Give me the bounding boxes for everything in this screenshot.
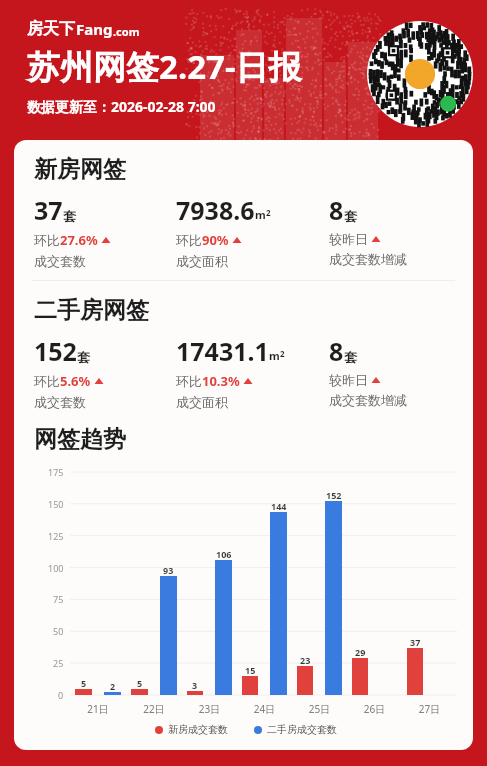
staticText: 8 (329, 193, 344, 227)
staticText: 93 (163, 564, 174, 576)
staticText: Fang (76, 19, 113, 39)
staticText: 二手房网签 (34, 296, 149, 325)
staticText: 25 (53, 657, 64, 669)
button[interactable]: 新房成交套数 (155, 723, 228, 736)
staticText: 175 (48, 466, 64, 478)
button[interactable]: 17431.1 (176, 334, 329, 410)
staticText: 成交面积 (176, 253, 228, 269)
staticText: 苏州网签2.27-日报 (27, 44, 302, 89)
staticText: 套 (77, 349, 90, 365)
staticText: 125 (48, 530, 64, 542)
staticText: m (255, 207, 266, 222)
staticText: 5.6% (60, 372, 91, 390)
staticText: 2 (266, 207, 271, 218)
staticText: 5 (137, 677, 143, 689)
button[interactable]: 8 (329, 193, 457, 267)
staticText: 152 (326, 489, 342, 501)
button[interactable]: 8 (329, 334, 457, 408)
staticText: 100 (48, 562, 64, 574)
staticText: 23日 (182, 702, 237, 716)
staticText: 27.6% (60, 231, 98, 249)
staticText: 0 (58, 689, 64, 701)
staticText: 90% (202, 231, 229, 249)
staticText: 17431.1 (176, 334, 269, 368)
staticText: 二手房成交套数 (267, 723, 337, 736)
staticText: 成交套数增减 (329, 392, 407, 408)
staticText: 3 (192, 679, 198, 691)
staticText: 24日 (237, 702, 292, 716)
staticText: 23 (300, 654, 311, 666)
staticText: 37 (410, 636, 421, 648)
staticText: 2 (110, 680, 116, 692)
staticText: 106 (216, 548, 232, 560)
staticText: 22日 (126, 702, 182, 716)
staticText: 21日 (70, 702, 126, 716)
staticText: 网签趋势 (34, 425, 126, 454)
staticText: 环比 (34, 373, 60, 389)
staticText: 套 (344, 208, 357, 224)
staticText: 成交套数 (34, 394, 86, 410)
staticText: 5 (81, 677, 87, 689)
staticText: 数据更新至：2026-02-28 7:00 (27, 97, 216, 116)
staticText: 37 (34, 193, 63, 227)
staticText: 150 (48, 498, 64, 510)
staticText: 成交套数增减 (329, 251, 407, 267)
button[interactable]: 扫码关注公众号 (367, 21, 473, 127)
button[interactable]: 37 (34, 193, 176, 269)
staticText: 152 (34, 334, 77, 368)
staticText: 较昨日 (329, 372, 368, 388)
staticText: 环比 (176, 232, 202, 248)
staticText: 26日 (347, 702, 402, 716)
staticText: 成交面积 (176, 394, 228, 410)
staticText: 环比 (34, 232, 60, 248)
staticText: 2 (280, 348, 285, 359)
staticText: 144 (271, 500, 287, 512)
staticText: 29 (355, 646, 366, 658)
staticText: 房天下 (27, 19, 75, 39)
staticText: 新房网签 (34, 155, 126, 184)
staticText: 新房成交套数 (168, 723, 228, 736)
staticText: 15 (245, 664, 256, 676)
button[interactable]: 152 (34, 334, 176, 410)
staticText: .com (113, 24, 140, 39)
staticText: 套 (63, 208, 76, 224)
staticText: 成交套数 (34, 253, 86, 269)
staticText: 环比 (176, 373, 202, 389)
staticText: 75 (53, 593, 64, 605)
staticText: m (269, 348, 280, 363)
staticText: 10.3% (202, 372, 240, 390)
staticText: 7938.6 (176, 193, 255, 227)
button[interactable]: 7938.6 (176, 193, 329, 269)
button[interactable]: 二手房成交套数 (254, 723, 337, 736)
staticText: 8 (329, 334, 344, 368)
staticText: 套 (344, 349, 357, 365)
staticText: 50 (53, 625, 64, 637)
staticText: 25日 (292, 702, 347, 716)
staticText: 27日 (402, 702, 457, 716)
staticText: 较昨日 (329, 231, 368, 247)
